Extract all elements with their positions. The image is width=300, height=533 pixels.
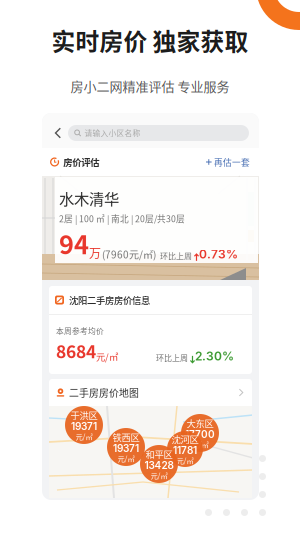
staticText: 0.73% [199,247,238,261]
staticText: 二手房房价地图 [69,385,139,400]
staticText: 2居 | 100 ㎡ | 南北 | 20层/共30层 [59,212,185,225]
staticText: 铁西区 [112,430,139,444]
staticText: 元/㎡ [96,350,118,363]
staticText: 2.30% [195,349,234,363]
staticText: 沈阳二手房房价信息 [69,293,150,307]
staticText: 房价评估 [63,155,99,169]
staticText: 17700 [185,428,215,440]
staticText: 大东区 [186,416,213,430]
staticText: 19371 [113,442,139,454]
staticText: 元/㎡ [191,439,208,450]
staticText: 再估一套 [214,156,250,168]
staticText: 环比上周 [160,250,192,261]
staticText: 19371 [71,420,97,432]
staticText: 13428 [144,459,173,471]
staticText: 元/㎡ [117,453,134,464]
staticText: 元/㎡ [75,431,92,442]
staticText: 沈河区 [171,432,198,446]
staticText: 元/㎡ [150,470,167,481]
button[interactable]: 返回 [48,122,68,144]
staticText: 万 [89,244,101,261]
staticText: 11781 [173,444,197,456]
staticText: 本周参考均价 [56,325,104,336]
button[interactable]: 请输入小区名称 [68,125,249,141]
staticText: 环比上周 [156,352,188,363]
staticText: 请输入小区名称 [84,127,140,139]
staticText: 房小二网精准评估 专业服务 [70,76,229,95]
staticText: 于洪区 [70,408,97,422]
staticText: 和平区 [145,447,172,461]
staticText: 实时房价 独家获取 [51,23,248,57]
staticText: 8684 [56,338,96,363]
staticText: 94 [59,225,89,261]
staticText: (7960元/㎡) [102,247,156,261]
button[interactable]: 二手房房价地图 [49,379,252,406]
staticText: 元/㎡ [176,455,193,466]
button[interactable]: 再估一套 [206,156,250,168]
staticText: 水木清华 [59,187,119,209]
